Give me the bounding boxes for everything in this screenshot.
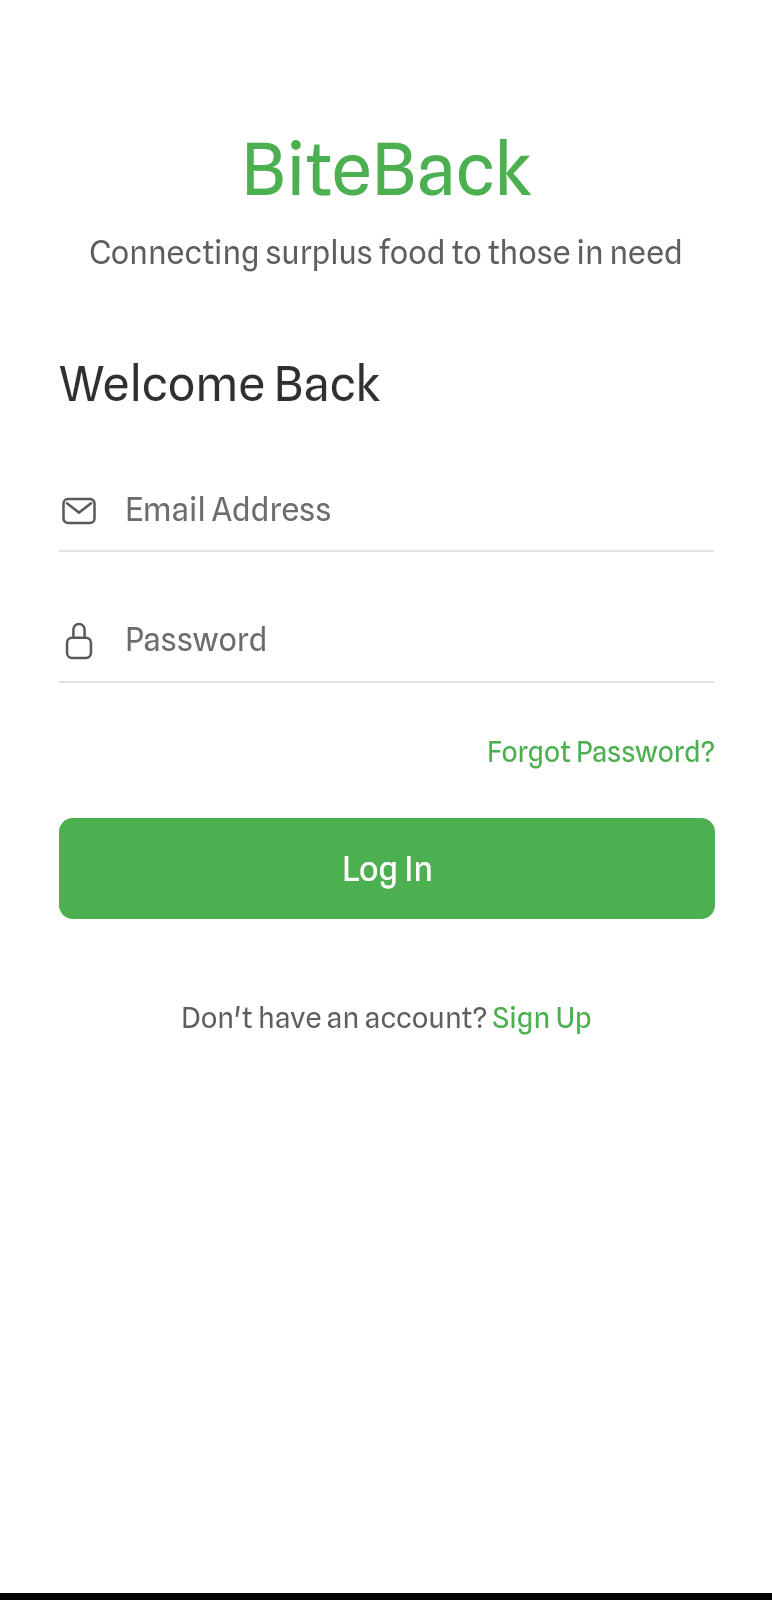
staticText: Welcome Back	[59, 355, 380, 413]
other: Email Address	[59, 491, 99, 531]
staticText: Password	[125, 620, 268, 658]
button[interactable]: Password	[59, 609, 713, 673]
button[interactable]: Forgot Password?	[477, 735, 713, 781]
button[interactable]: Log In	[59, 818, 715, 919]
staticText: Connecting surplus food to those in need	[0, 233, 772, 272]
staticText: Email Address	[125, 490, 332, 528]
other: Password	[59, 621, 99, 661]
staticText: BiteBack	[0, 126, 772, 212]
button[interactable]: Email Address	[59, 479, 713, 543]
staticText: Log In	[342, 848, 433, 889]
staticText: Forgot Password?	[487, 735, 715, 769]
button[interactable]: Don't have an account? Sign Up	[181, 1000, 592, 1035]
